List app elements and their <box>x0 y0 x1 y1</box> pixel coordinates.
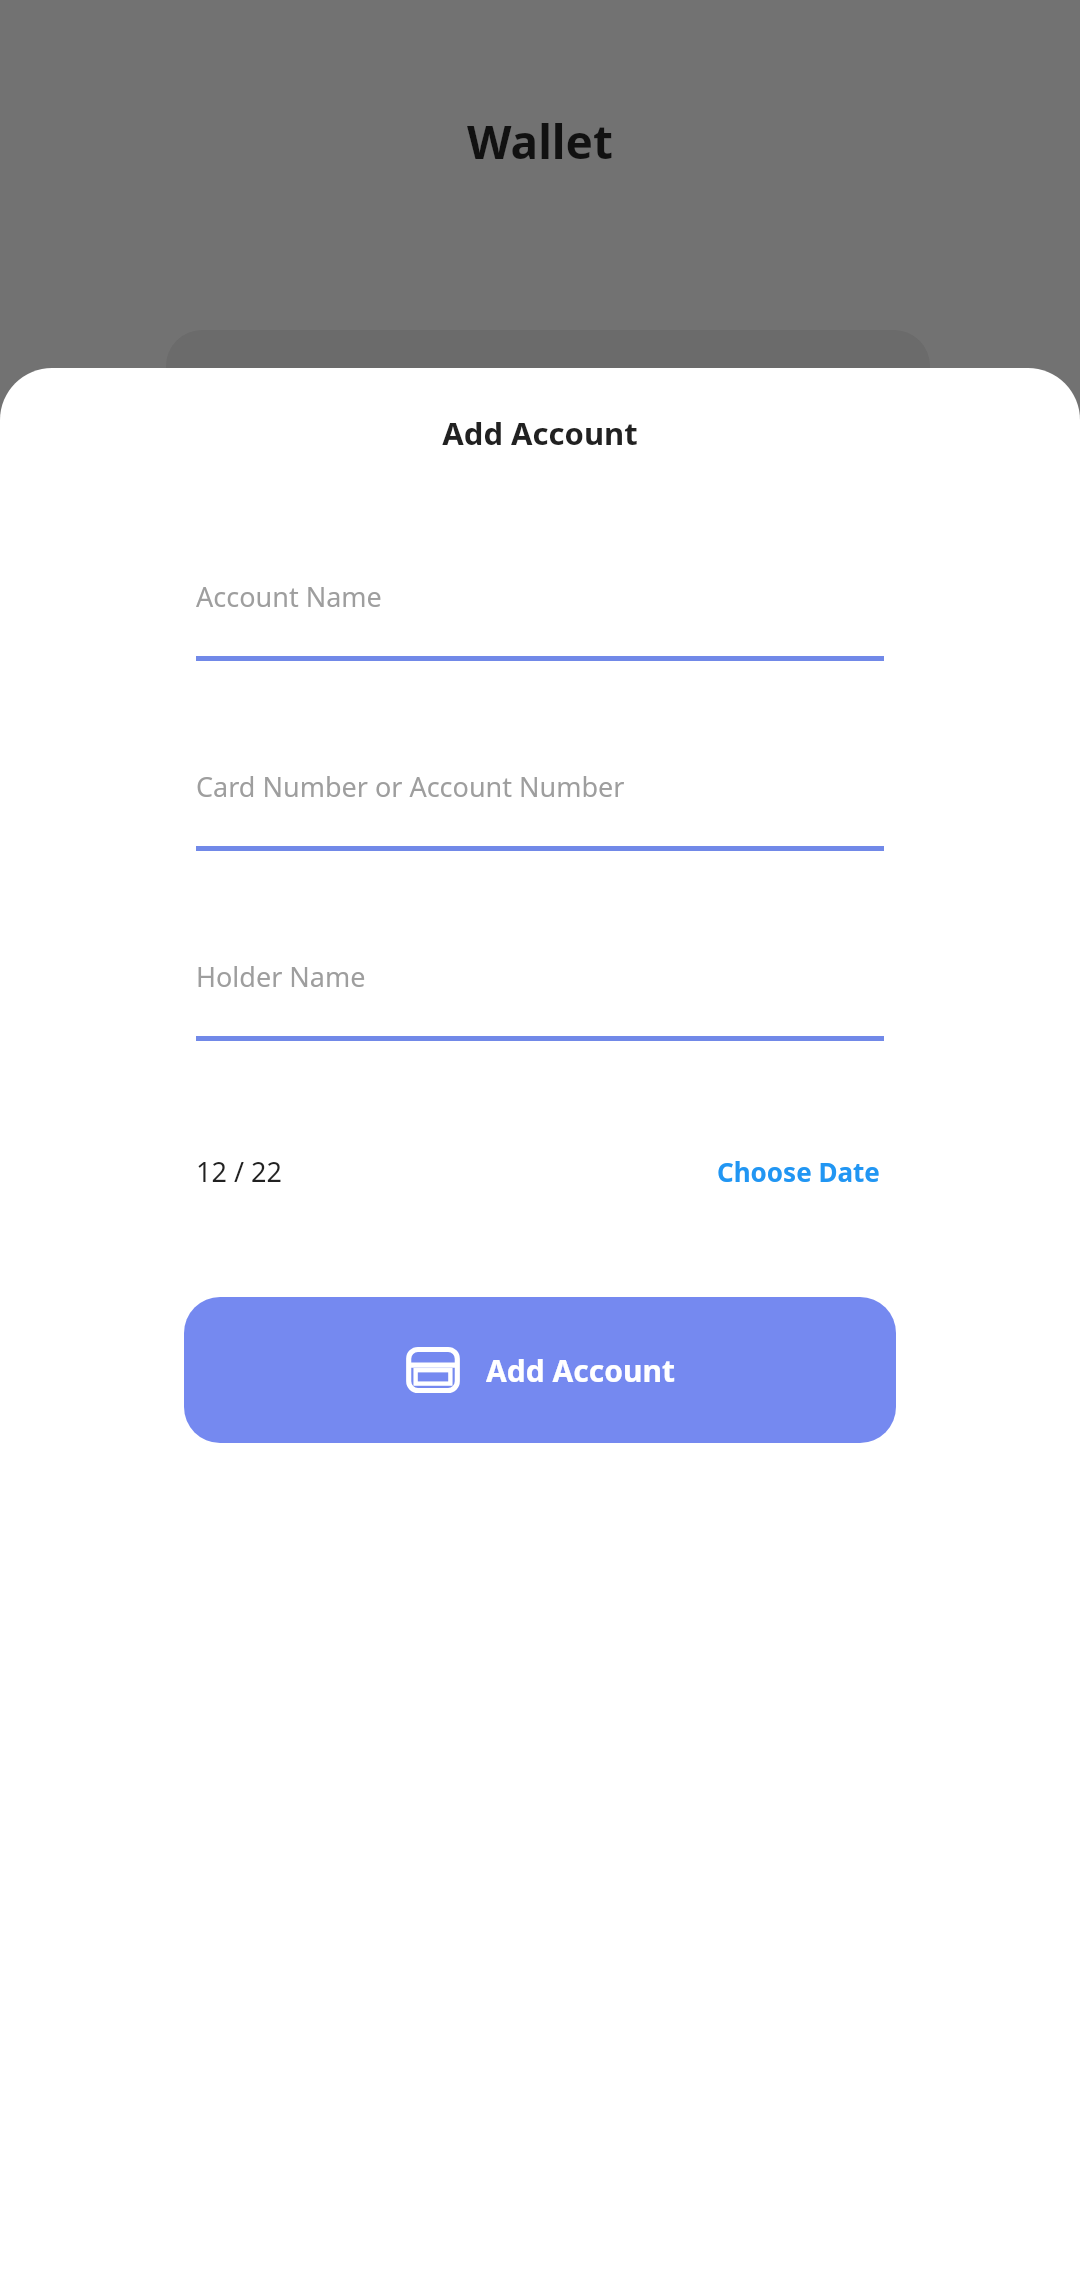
button[interactable]: Card Number or Account Number <box>196 760 884 851</box>
button[interactable]: Holder Name <box>196 950 884 1041</box>
staticText: Add Account <box>0 412 1080 454</box>
staticText: 12 / 22 <box>196 1153 282 1190</box>
staticText: Choose Date <box>717 1154 880 1189</box>
button[interactable]: Account Name <box>196 570 884 661</box>
staticText: Account Name <box>196 578 382 615</box>
staticText: Holder Name <box>196 958 366 995</box>
staticText: Wallet <box>0 110 1080 173</box>
button[interactable]: Choose Date <box>713 1150 884 1193</box>
staticText: Card Number or Account Number <box>196 768 625 805</box>
button[interactable]: Add Account <box>184 1297 896 1443</box>
staticText: Add Account <box>486 1350 675 1391</box>
